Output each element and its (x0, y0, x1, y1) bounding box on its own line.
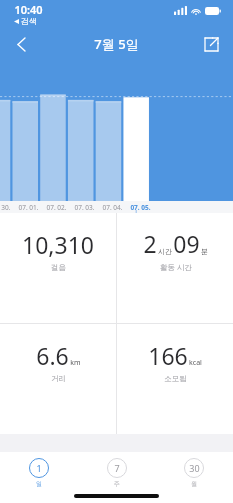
button[interactable]: 7 (104, 457, 130, 489)
staticText: 06. 30. (0, 203, 11, 212)
staticText: 1 (36, 462, 42, 474)
staticText: 2 (143, 228, 157, 259)
staticText: 30 (189, 462, 200, 474)
staticText: 소모됨 (164, 374, 187, 383)
staticText: 7 (114, 462, 120, 474)
staticText: 6.6 (36, 340, 69, 371)
staticText: 월 (191, 480, 197, 488)
staticText: 일 (36, 480, 42, 488)
staticText: km (70, 358, 81, 368)
staticText: 07. 05. (130, 203, 151, 212)
staticText: kcal (189, 358, 202, 368)
staticText: 활동 시간 (160, 262, 192, 272)
staticText: 07. 02. (46, 203, 67, 212)
staticText: 걸음 (51, 263, 66, 272)
button[interactable]: Back (6, 29, 36, 59)
staticText: 시간 (158, 247, 172, 256)
button[interactable]: Share (197, 30, 225, 58)
staticText: 10,310 (22, 229, 94, 260)
button[interactable]: 166 (117, 324, 233, 434)
staticText: 07. 03. (74, 203, 95, 212)
staticText: 분 (201, 247, 208, 256)
staticText: 166 (148, 340, 188, 371)
staticText: 검색 (21, 16, 37, 26)
button[interactable]: 10,310 (0, 213, 116, 323)
button[interactable]: 2 (117, 213, 233, 323)
button[interactable]: 6.6 (0, 324, 116, 434)
staticText: 07. 01. (18, 203, 39, 212)
staticText: 07. 04. (102, 203, 123, 212)
button[interactable]: 30 (181, 457, 207, 489)
staticText: 09 (173, 228, 200, 259)
staticText: 10:40 (14, 2, 43, 17)
staticText: 7월 5일 (94, 35, 139, 53)
staticText: 거리 (51, 374, 66, 383)
button[interactable]: 1 (26, 457, 52, 489)
staticText: 주 (114, 480, 120, 488)
